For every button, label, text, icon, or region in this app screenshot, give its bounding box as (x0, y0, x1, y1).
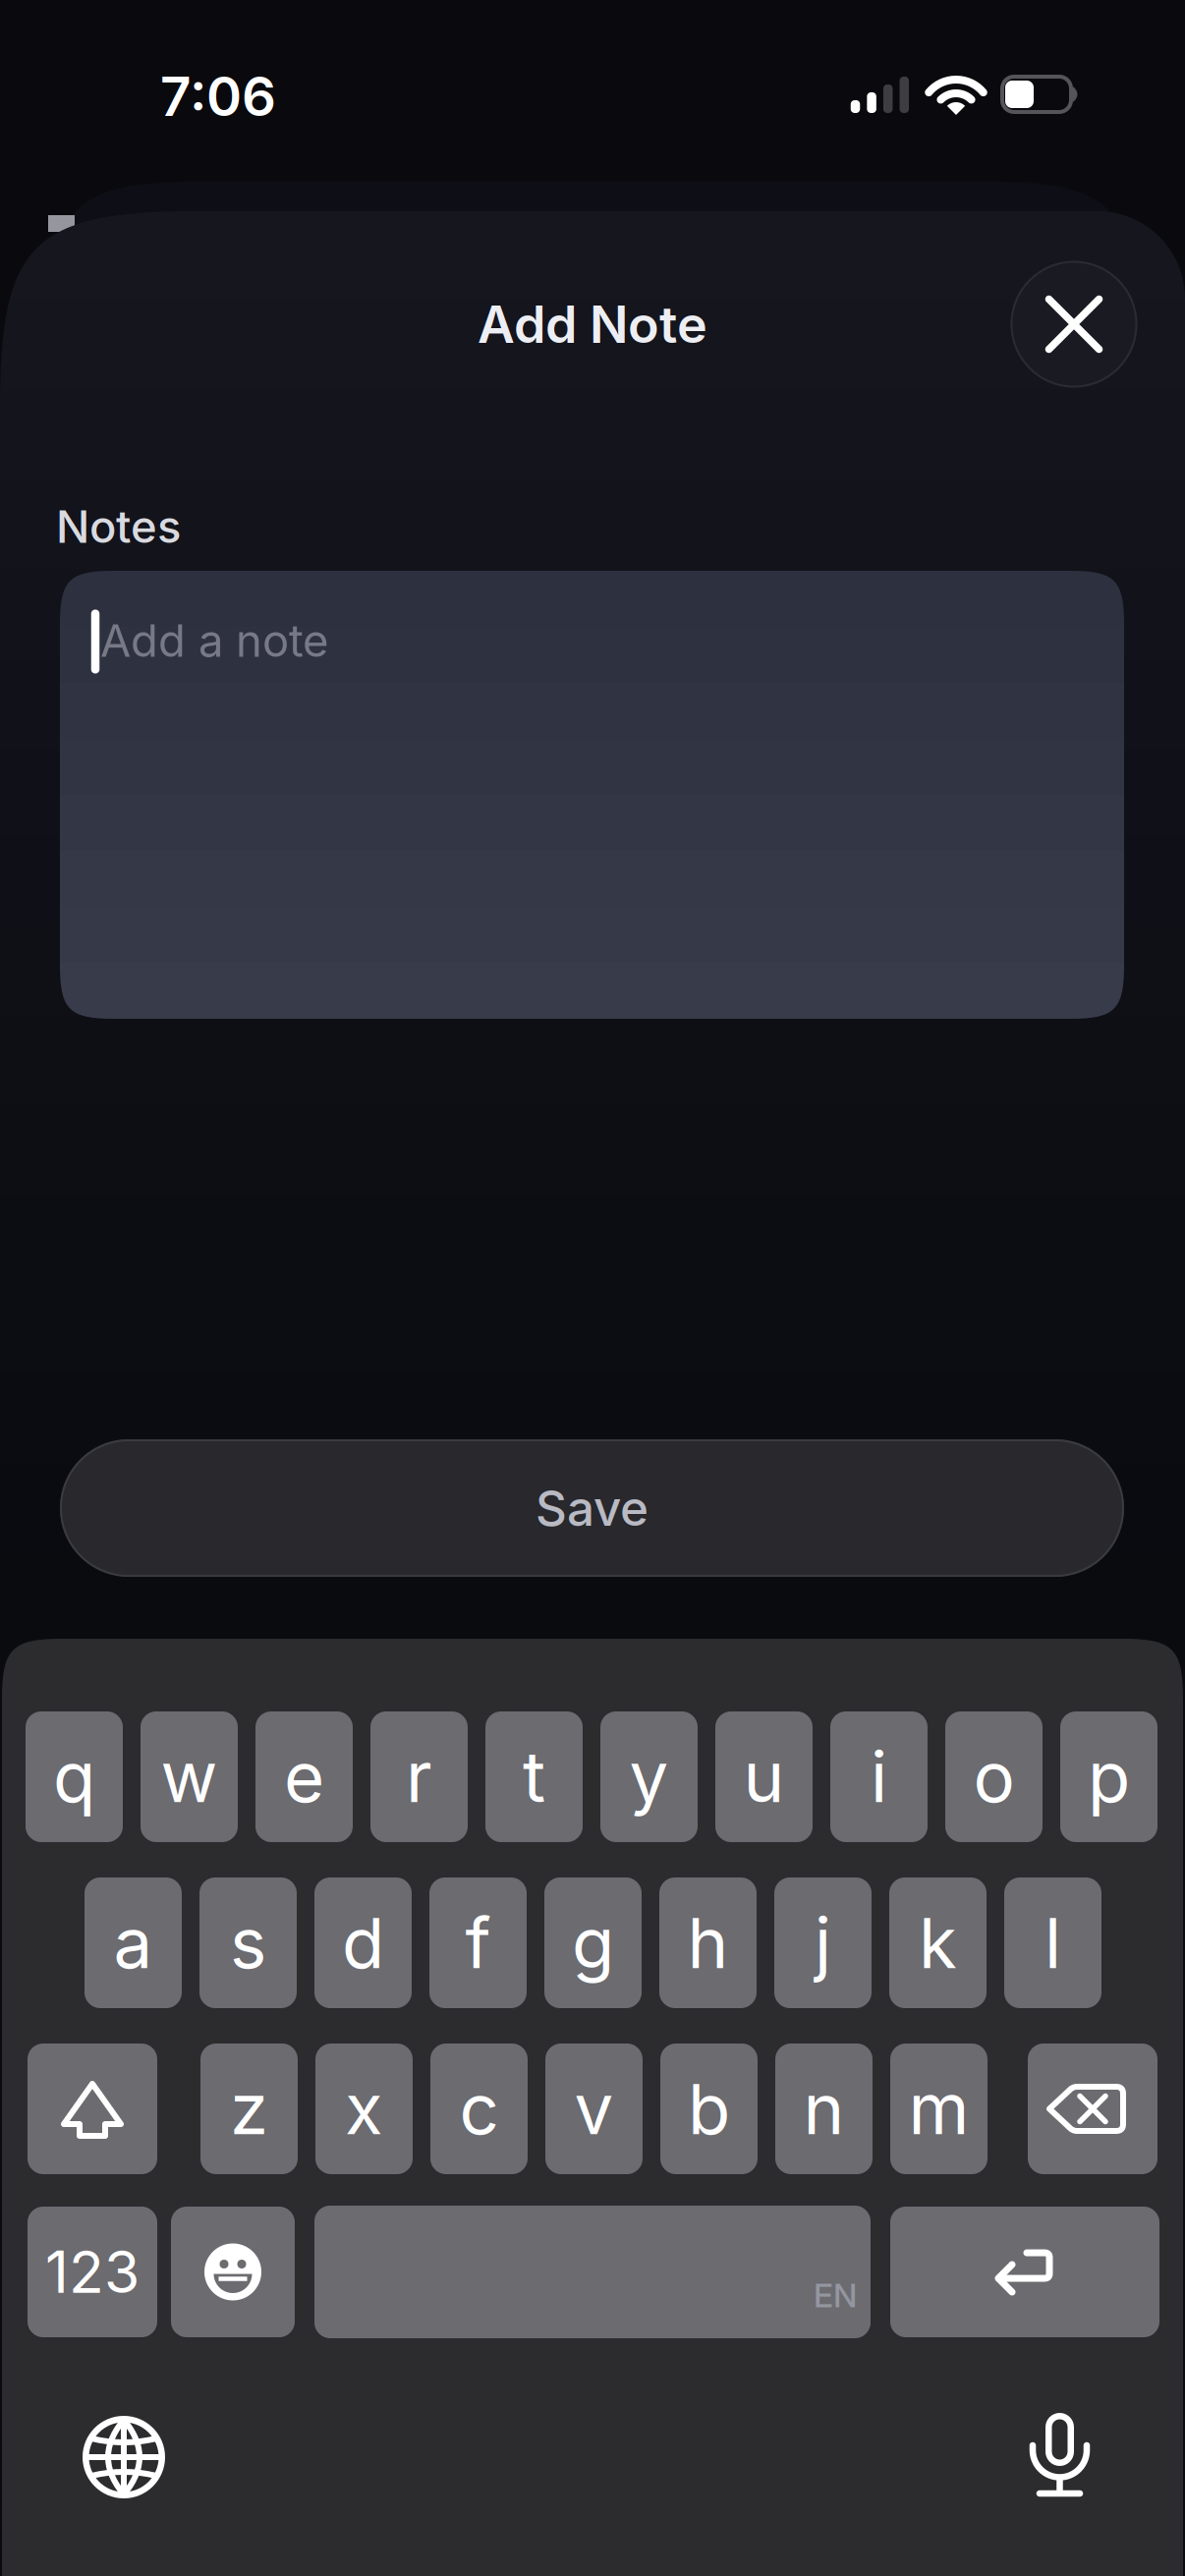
button[interactable]: s (199, 1877, 297, 2008)
staticText: s (230, 1902, 266, 1984)
staticText: a (113, 1902, 153, 1984)
staticText: o (973, 1736, 1015, 1818)
button[interactable]: Save (60, 1439, 1124, 1577)
button[interactable]: l (1004, 1877, 1101, 2008)
button[interactable]: e (255, 1711, 353, 1842)
button[interactable]: Delete (1028, 2044, 1157, 2174)
staticText: w (161, 1736, 218, 1818)
button[interactable]: Space (314, 2206, 871, 2338)
button[interactable]: k (889, 1877, 987, 2008)
button[interactable]: Shift (28, 2044, 157, 2174)
button[interactable]: r (370, 1711, 468, 1842)
button[interactable]: b (660, 2044, 758, 2174)
staticText: 7:06 (160, 65, 276, 128)
staticText: j (815, 1902, 831, 1984)
staticText: d (342, 1902, 384, 1984)
button[interactable]: h (659, 1877, 757, 2008)
staticText: z (230, 2068, 268, 2150)
staticText: g (572, 1902, 614, 1984)
staticText: Notes (56, 500, 181, 553)
button[interactable]: d (314, 1877, 412, 2008)
staticText: EN (814, 2276, 857, 2315)
button[interactable]: t (485, 1711, 583, 1842)
button[interactable]: x (315, 2044, 413, 2174)
staticText: x (345, 2068, 383, 2150)
staticText: p (1088, 1736, 1130, 1818)
button[interactable]: u (715, 1711, 813, 1842)
staticText: c (459, 2068, 499, 2150)
button[interactable]: Close (1011, 261, 1137, 388)
staticText: f (465, 1902, 491, 1984)
staticText: Add a note (100, 614, 328, 667)
staticText: k (919, 1902, 957, 1984)
staticText: 123 (45, 2238, 140, 2306)
staticText: y (629, 1736, 669, 1818)
button[interactable]: Next keyboard (77, 2410, 171, 2504)
staticText: t (523, 1736, 545, 1818)
staticText: h (687, 1902, 729, 1984)
button[interactable]: q (26, 1711, 123, 1842)
button[interactable]: v (545, 2044, 643, 2174)
button[interactable]: y (600, 1711, 698, 1842)
staticText: u (743, 1736, 785, 1818)
button[interactable]: g (544, 1877, 642, 2008)
staticText: Add Note (478, 294, 707, 354)
button[interactable]: f (429, 1877, 527, 2008)
button[interactable]: Dictation (1020, 2404, 1099, 2502)
button[interactable]: Emoji (171, 2207, 295, 2337)
button[interactable]: m (890, 2044, 987, 2174)
button[interactable]: p (1060, 1711, 1157, 1842)
button[interactable]: a (85, 1877, 182, 2008)
staticText: b (688, 2068, 730, 2150)
button[interactable]: n (775, 2044, 873, 2174)
button[interactable]: Return (890, 2207, 1159, 2337)
button[interactable]: 123 (28, 2207, 157, 2337)
staticText: i (871, 1736, 887, 1818)
staticText: q (53, 1736, 95, 1818)
button[interactable]: z (200, 2044, 298, 2174)
button[interactable]: o (945, 1711, 1043, 1842)
staticText: n (803, 2068, 845, 2150)
staticText: Save (536, 1479, 649, 1537)
staticText: e (284, 1736, 324, 1818)
button[interactable]: c (430, 2044, 528, 2174)
button[interactable]: Add a note (60, 571, 1124, 1019)
button[interactable]: j (774, 1877, 872, 2008)
staticText: v (574, 2068, 614, 2150)
staticText: l (1044, 1902, 1061, 1984)
button[interactable]: i (830, 1711, 928, 1842)
staticText: r (406, 1736, 432, 1818)
button[interactable]: w (141, 1711, 238, 1842)
staticText: m (908, 2068, 969, 2150)
